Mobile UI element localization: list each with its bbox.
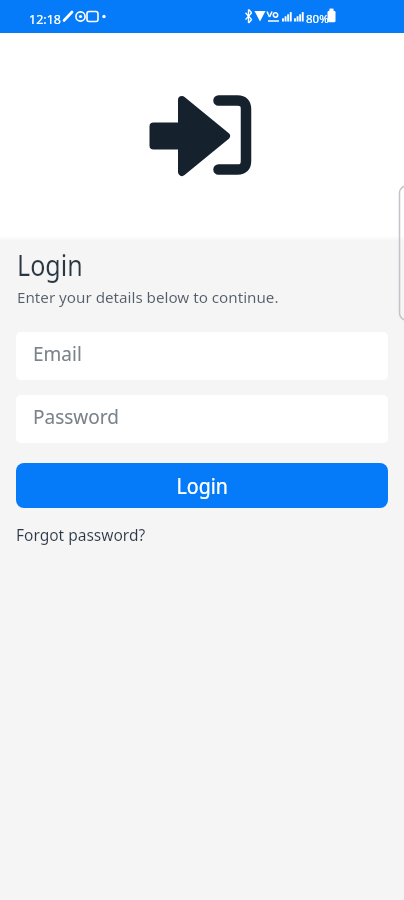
button[interactable]: Email [16, 332, 388, 380]
staticText: 80% [306, 11, 329, 27]
staticText: Forgot password? [16, 524, 146, 545]
staticText: Password [33, 404, 119, 430]
staticText: Login [177, 471, 228, 500]
staticText: Email [33, 341, 82, 367]
button[interactable]: Password [16, 395, 388, 443]
button[interactable]: Forgot password? [16, 524, 146, 545]
staticText: 12:18 [29, 11, 61, 28]
staticText: Login [17, 244, 83, 284]
staticText: Enter your details below to continue. [17, 287, 279, 308]
button[interactable]: Login [16, 463, 388, 508]
